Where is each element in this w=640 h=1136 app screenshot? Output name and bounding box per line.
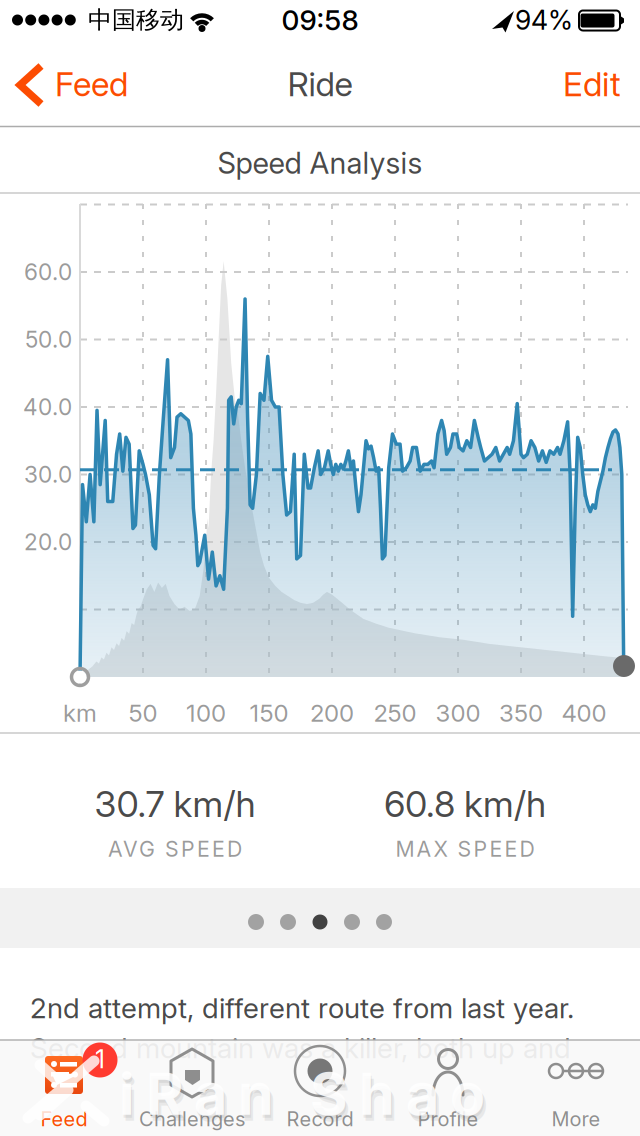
staticText: 350 <box>499 699 543 727</box>
staticText: Ride <box>287 64 352 104</box>
staticText: 30.0 <box>24 461 72 488</box>
staticText: 150 <box>249 699 288 727</box>
staticText: 60.0 <box>24 259 72 285</box>
staticText: Challenges <box>139 1107 245 1131</box>
staticText: 50.0 <box>25 326 72 353</box>
staticText: Record <box>286 1107 353 1131</box>
staticText: iRan Shao <box>122 1066 488 1134</box>
staticText: Edit <box>563 64 621 104</box>
staticText: 100 <box>186 699 226 727</box>
staticText: Feed <box>55 64 128 104</box>
staticText: 中国移动 <box>88 5 184 35</box>
staticText: Profile <box>417 1107 478 1131</box>
staticText: 1 <box>95 1044 105 1074</box>
staticText: iRan Shao <box>120 1063 486 1131</box>
staticText: 2nd attempt, different route from last y… <box>30 991 574 1024</box>
staticText: More <box>551 1107 600 1131</box>
staticText: 40.0 <box>23 394 72 420</box>
staticText: 60.8 km/h <box>384 783 546 825</box>
staticText: 300 <box>435 699 480 727</box>
staticText: MAX SPEED <box>395 836 534 862</box>
staticText: km <box>63 699 97 727</box>
staticText: 250 <box>373 699 416 727</box>
staticText: Speed Analysis <box>217 146 422 180</box>
staticText: 200 <box>310 699 354 727</box>
staticText: 20.0 <box>24 529 72 555</box>
staticText: Feed <box>40 1107 87 1131</box>
staticText: 50 <box>128 699 157 727</box>
staticText: 09:58 <box>281 3 358 36</box>
staticText: 400 <box>561 699 606 727</box>
staticText: AVG SPEED <box>108 836 242 862</box>
staticText: iRan Shao <box>119 1060 485 1128</box>
staticText: 94% <box>515 4 573 36</box>
staticText: Second mountain was a killer, both up an… <box>30 1031 571 1064</box>
staticText: 30.7 km/h <box>94 783 255 825</box>
